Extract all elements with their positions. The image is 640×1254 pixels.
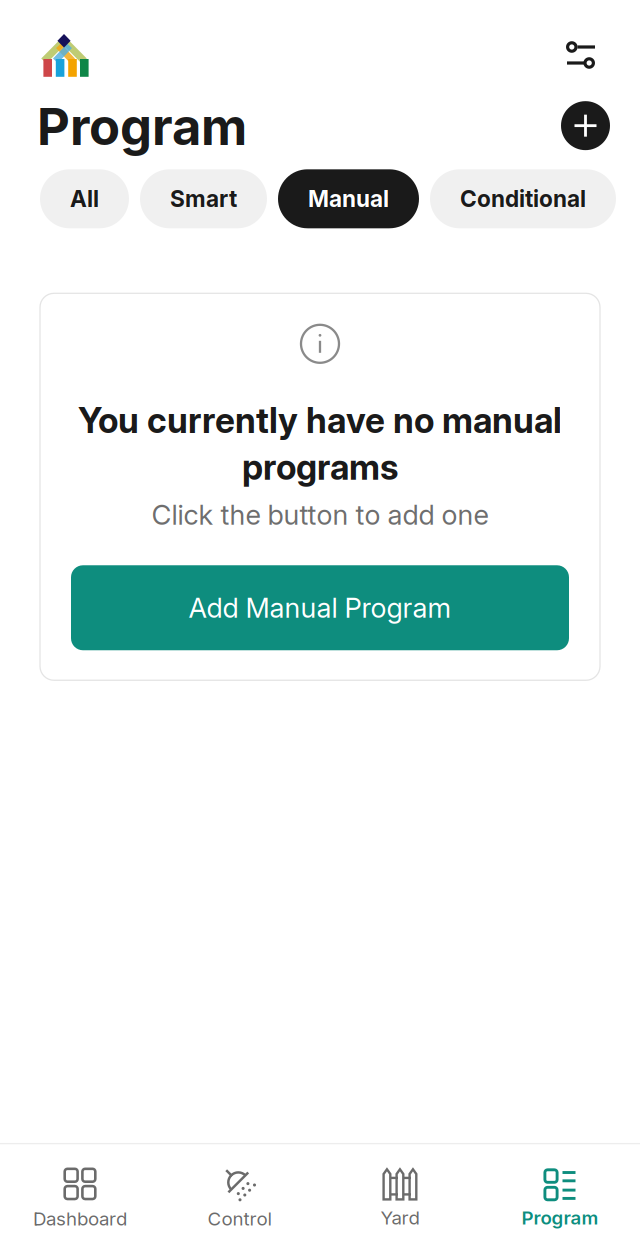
staticText: Program (521, 1206, 598, 1229)
button[interactable]: Add program (561, 102, 610, 151)
button[interactable]: Filters (566, 40, 596, 69)
staticText: Program (37, 96, 247, 157)
staticText: programs (242, 446, 398, 488)
button[interactable]: Add Manual Program (71, 565, 569, 650)
button[interactable]: Smart (140, 169, 267, 228)
button[interactable]: Conditional (430, 169, 616, 228)
button[interactable]: Manual (278, 169, 419, 228)
staticText: Conditional (460, 185, 586, 212)
staticText: Smart (170, 185, 237, 212)
staticText: Add Manual Program (188, 591, 451, 624)
staticText: Click the button to add one (151, 498, 488, 531)
staticText: Manual (308, 185, 389, 212)
button[interactable]: Yard (320, 1145, 480, 1253)
staticText: You currently have no manual (78, 399, 562, 441)
button[interactable]: Dashboard (0, 1144, 160, 1254)
button[interactable]: All (40, 169, 129, 228)
staticText: Dashboard (33, 1207, 127, 1230)
button[interactable]: Program (480, 1145, 640, 1253)
staticText: All (70, 185, 99, 212)
staticText: Yard (380, 1206, 419, 1229)
button[interactable]: Control (160, 1144, 320, 1254)
staticText: Control (207, 1207, 272, 1230)
